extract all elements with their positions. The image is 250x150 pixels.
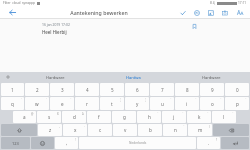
- staticText: ¨: [220, 98, 222, 102]
- button[interactable]: ,: [55, 137, 78, 149]
- button[interactable]: 0: [225, 83, 249, 96]
- button[interactable]: 123: [1, 137, 30, 149]
- staticText: 17:11: [238, 1, 247, 5]
- button[interactable]: m: [188, 124, 212, 136]
- button[interactable]: p: [225, 97, 249, 110]
- button[interactable]: Meer: [0, 72, 16, 82]
- staticText: 4: [86, 87, 89, 93]
- staticText: ,: [66, 140, 68, 146]
- button[interactable]: 8: [175, 83, 199, 96]
- staticText: 123: [12, 141, 19, 146]
- button[interactable]: v: [113, 124, 137, 136]
- staticText: 5: [111, 87, 114, 93]
- staticText: x: [74, 127, 77, 133]
- staticText: ¨: [232, 112, 234, 116]
- staticText: q: [11, 101, 14, 107]
- button[interactable]: .: [197, 137, 220, 149]
- staticText: v: [124, 127, 127, 133]
- button[interactable]: q: [1, 97, 24, 110]
- button[interactable]: 1: [1, 83, 24, 96]
- staticText: Hardware: [202, 75, 221, 80]
- staticText: l: [223, 114, 225, 120]
- staticText: Filter cloud synappp: [3, 1, 35, 5]
- staticText: @: [31, 112, 34, 116]
- button[interactable]: e: [50, 97, 74, 110]
- staticText: 8 4,: [210, 1, 216, 5]
- button[interactable]: Hardware: [16, 72, 94, 82]
- staticText: r: [86, 101, 88, 107]
- button[interactable]: h: [137, 111, 161, 123]
- button[interactable]: k: [187, 111, 211, 123]
- button[interactable]: Opslaan: [175, 6, 190, 19]
- staticText: b: [149, 127, 152, 133]
- button[interactable]: 5: [100, 83, 124, 96]
- staticText: ¨: [207, 112, 209, 116]
- staticText: 7: [161, 87, 164, 93]
- button[interactable]: t: [100, 97, 124, 110]
- button[interactable]: z: [38, 124, 62, 136]
- button[interactable]: Camera: [218, 6, 232, 19]
- staticText: Heel Hierbij: [42, 29, 67, 35]
- staticText: f: [98, 114, 100, 120]
- staticText: y: [136, 101, 139, 107]
- button[interactable]: a: [13, 111, 36, 123]
- staticText: n: [174, 127, 177, 133]
- button[interactable]: c: [88, 124, 112, 136]
- staticText: 1: [11, 87, 14, 93]
- button[interactable]: Afbeelding: [204, 6, 218, 19]
- button[interactable]: r: [75, 97, 99, 110]
- staticText: 3: [61, 87, 64, 93]
- button[interactable]: Terug: [0, 6, 24, 19]
- staticText: ´: [46, 98, 47, 102]
- button[interactable]: g: [112, 111, 136, 123]
- button[interactable]: Tekststijl: [232, 6, 248, 19]
- button[interactable]: n: [163, 124, 187, 136]
- button[interactable]: d: [62, 111, 86, 123]
- staticText: 16 jan 2019 17:02: [42, 22, 70, 27]
- staticText: Aantekening bewerken: [70, 9, 128, 16]
- staticText: ?: [216, 138, 218, 142]
- button[interactable]: Backspace: [213, 124, 249, 136]
- button[interactable]: Emoji: [31, 137, 54, 149]
- button[interactable]: Hardware: [172, 72, 250, 82]
- button[interactable]: s: [37, 111, 61, 123]
- staticText: .: [208, 140, 210, 146]
- button[interactable]: Bladwijzer: [190, 22, 198, 30]
- staticText: d: [73, 114, 76, 120]
- staticText: -: [59, 125, 60, 129]
- button[interactable]: Hardwa: [94, 72, 172, 82]
- staticText: e: [61, 101, 64, 107]
- button[interactable]: o: [200, 97, 224, 110]
- button[interactable]: j: [162, 111, 186, 123]
- button[interactable]: u: [150, 97, 174, 110]
- staticText: 0: [236, 87, 239, 93]
- button[interactable]: l: [212, 111, 236, 123]
- staticText: ¨: [183, 125, 185, 129]
- button[interactable]: 7: [150, 83, 174, 96]
- staticText: p: [236, 101, 239, 107]
- button[interactable]: 4: [75, 83, 99, 96]
- button[interactable]: 3: [50, 83, 74, 96]
- button[interactable]: x: [63, 124, 87, 136]
- button[interactable]: i: [175, 97, 199, 110]
- staticText: /: [209, 125, 210, 129]
- button[interactable]: 2: [25, 83, 49, 96]
- button[interactable]: y: [125, 97, 149, 110]
- button[interactable]: Shift: [1, 124, 37, 136]
- button[interactable]: Ongedaan maken: [190, 6, 204, 19]
- staticText: ¨: [182, 112, 184, 116]
- staticText: c: [99, 127, 102, 133]
- staticText: w: [35, 101, 39, 107]
- staticText: Hardware: [46, 75, 65, 80]
- button[interactable]: Enter: [221, 137, 249, 149]
- button[interactable]: b: [138, 124, 162, 136]
- button[interactable]: 9: [200, 83, 224, 96]
- button[interactable]: 6: [125, 83, 149, 96]
- button[interactable]: w: [25, 97, 49, 110]
- staticText: a: [23, 114, 26, 120]
- staticText: 6: [136, 87, 139, 93]
- staticText: ¦: [145, 98, 147, 102]
- staticText: Nederlands: [129, 141, 147, 145]
- button[interactable]: f: [87, 111, 111, 123]
- button[interactable]: Spatie: [79, 137, 196, 149]
